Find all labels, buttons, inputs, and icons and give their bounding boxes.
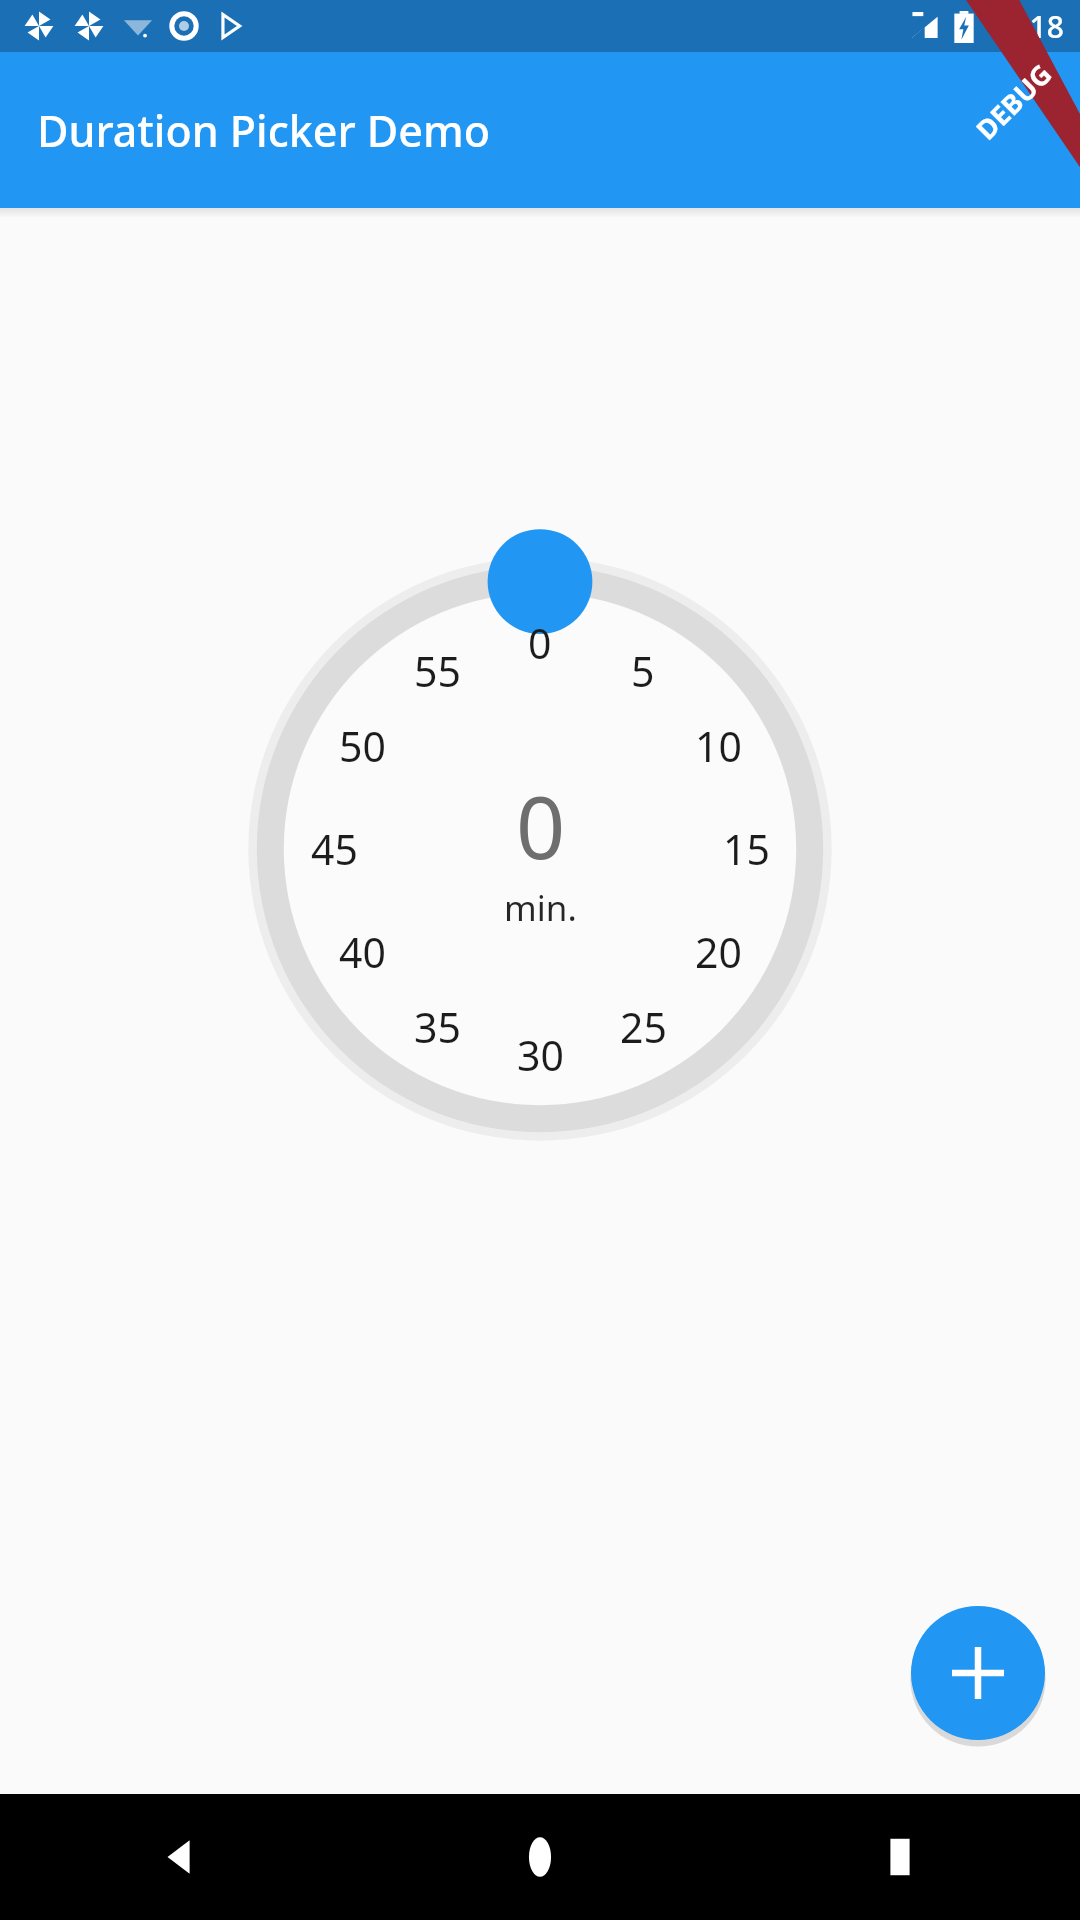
staticText: 40 — [339, 924, 386, 980]
staticText: DEBUG — [967, 55, 1059, 147]
staticText: 5 — [631, 643, 655, 699]
button[interactable]: Recents — [720, 1794, 1080, 1920]
button[interactable]: Home — [360, 1794, 720, 1920]
staticText: 0 — [516, 767, 566, 884]
staticText: 10:18 — [987, 6, 1064, 47]
button[interactable]: Duration picker dial — [240, 549, 840, 1149]
staticText: 10 — [695, 718, 742, 774]
button[interactable]: Add — [911, 1606, 1045, 1740]
staticText: 25 — [620, 999, 667, 1055]
staticText: 20 — [695, 924, 742, 980]
staticText: 50 — [339, 718, 386, 774]
staticText: Duration Picker Demo — [37, 101, 490, 160]
staticText: 35 — [414, 999, 461, 1055]
staticText: 55 — [414, 643, 461, 699]
staticText: min. — [504, 884, 577, 932]
staticText: 0 — [528, 615, 552, 671]
staticText: 15 — [723, 821, 770, 877]
button[interactable]: Back — [0, 1794, 360, 1920]
staticText: 45 — [311, 821, 358, 877]
staticText: 30 — [517, 1027, 564, 1083]
